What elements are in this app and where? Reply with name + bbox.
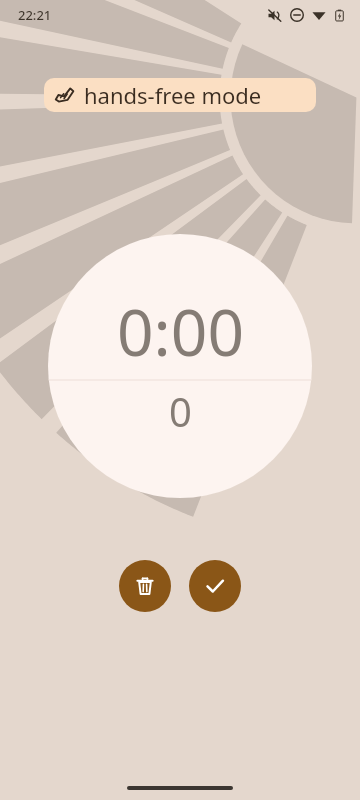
button[interactable]: Confirm — [189, 560, 241, 612]
staticText: 0:00 — [117, 288, 244, 375]
staticText: hands-free mode — [84, 80, 262, 110]
button[interactable]: 0:00 — [48, 234, 312, 498]
button[interactable]: Delete — [119, 560, 171, 612]
button[interactable]: hands-free mode — [44, 78, 316, 112]
staticText: 0 — [169, 384, 192, 438]
staticText: 22:21 — [18, 6, 52, 24]
